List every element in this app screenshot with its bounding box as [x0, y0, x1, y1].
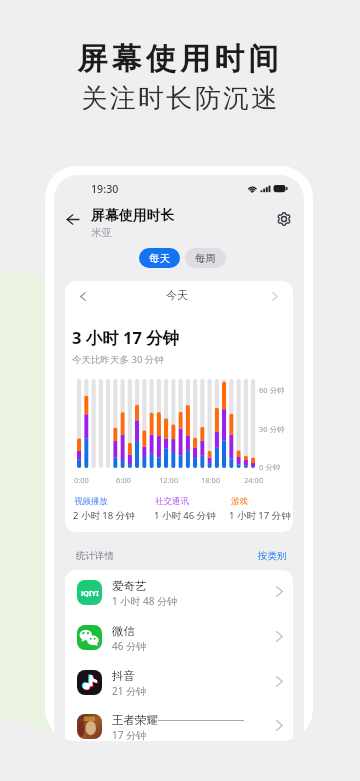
- staticText: 每天: [149, 252, 170, 265]
- staticText: 视频播放: [74, 496, 108, 507]
- staticText: 60 分钟: [259, 385, 285, 395]
- button[interactable]: 每天: [139, 248, 180, 268]
- button[interactable]: 王者荣耀: [65, 704, 293, 741]
- staticText: 46 分钟: [112, 639, 147, 653]
- staticText: 爱奇艺: [112, 579, 147, 593]
- staticText: 17 分钟: [112, 728, 147, 741]
- staticText: 2 小时 18 分钟: [73, 509, 135, 522]
- button[interactable]: Previous day: [75, 288, 91, 304]
- staticText: 微信: [112, 624, 135, 638]
- staticText: 0:00: [74, 475, 89, 485]
- staticText: 6:00: [116, 475, 131, 485]
- staticText: 30 分钟: [259, 424, 285, 434]
- staticText: 19:30: [91, 182, 119, 195]
- button[interactable]: 微信: [65, 615, 293, 660]
- button[interactable]: Next day: [267, 288, 283, 304]
- button[interactable]: Back: [59, 206, 85, 232]
- staticText: 1 小时 48 分钟: [112, 594, 177, 608]
- staticText: 24:00: [244, 475, 264, 485]
- staticText: 米亚: [91, 226, 112, 239]
- staticText: iQIYI: [81, 588, 99, 598]
- staticText: 12:00: [159, 475, 179, 485]
- staticText: 每周: [195, 252, 216, 265]
- staticText: 游戏: [231, 496, 248, 507]
- button[interactable]: 按类别: [258, 550, 287, 562]
- staticText: 1 小时 46 分钟: [154, 509, 216, 522]
- staticText: 按类别: [258, 550, 287, 562]
- staticText: 抖音: [112, 669, 135, 683]
- staticText: 1 小时 17 分钟: [229, 509, 291, 522]
- staticText: 21 分钟: [112, 684, 147, 698]
- staticText: 王者荣耀: [112, 713, 158, 727]
- button[interactable]: iQIYI: [65, 570, 293, 615]
- staticText: 18:00: [201, 475, 221, 485]
- staticText: 屏幕使用时间: [77, 40, 283, 78]
- staticText: 3 小时 17 分钟: [72, 326, 180, 349]
- staticText: 屏幕使用时长: [91, 207, 175, 224]
- staticText: 今天: [166, 288, 188, 302]
- staticText: 今天比昨天多 30 分钟: [72, 353, 164, 366]
- staticText: 统计详情: [76, 550, 114, 562]
- button[interactable]: 抖音: [65, 660, 293, 705]
- staticText: 社交通讯: [155, 496, 189, 507]
- staticText: 关注时长防沉迷: [81, 82, 280, 115]
- staticText: 0 分钟: [259, 462, 281, 472]
- button[interactable]: 每周: [185, 248, 226, 268]
- button[interactable]: Settings: [273, 208, 295, 230]
